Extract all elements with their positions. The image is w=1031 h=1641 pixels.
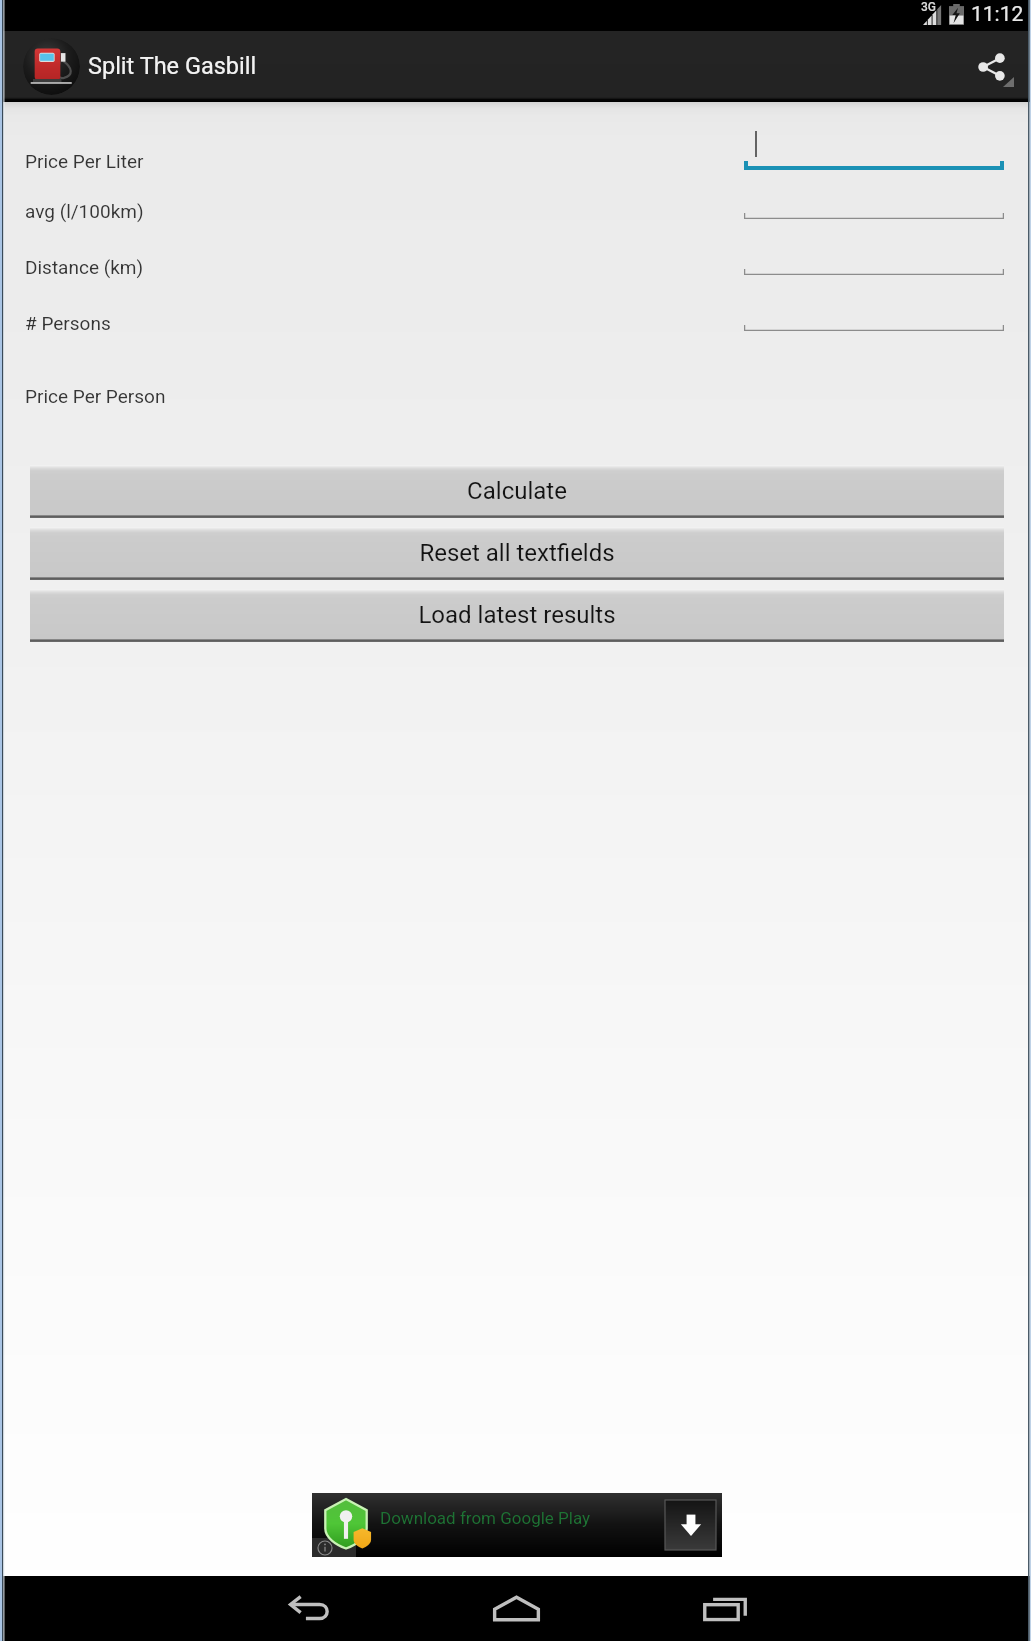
staticText: Load latest results	[418, 601, 616, 629]
staticText: Reset all textfields	[419, 539, 615, 567]
button[interactable]: Recent apps	[670, 1576, 780, 1641]
button[interactable]: Home	[461, 1576, 571, 1641]
button[interactable]: Share	[955, 31, 1027, 102]
staticText: Price Per Person	[25, 385, 166, 407]
staticText: Price Per Liter	[25, 150, 144, 172]
staticText: avg (l/100km)	[25, 200, 144, 222]
staticText: 3G	[921, 0, 936, 14]
button[interactable]: Back	[254, 1576, 364, 1641]
button[interactable]: Reset all textfields	[30, 527, 1004, 580]
button[interactable]	[744, 251, 1004, 277]
staticText: # Persons	[25, 312, 111, 334]
staticText: Split The Gasbill	[88, 52, 257, 80]
button[interactable]: Download	[665, 1500, 716, 1550]
button[interactable]: Calculate	[30, 465, 1004, 518]
button[interactable]: Ad info	[312, 1493, 722, 1557]
button[interactable]	[744, 307, 1004, 333]
staticText: Calculate	[467, 477, 567, 505]
staticText: 11:12	[971, 2, 1024, 27]
staticText: Download from Google Play	[380, 1508, 591, 1528]
button[interactable]: Load latest results	[30, 589, 1004, 642]
button[interactable]	[744, 146, 1004, 172]
button[interactable]: Ad info	[312, 1538, 356, 1557]
button[interactable]	[744, 195, 1004, 221]
staticText: Distance (km)	[25, 256, 144, 278]
